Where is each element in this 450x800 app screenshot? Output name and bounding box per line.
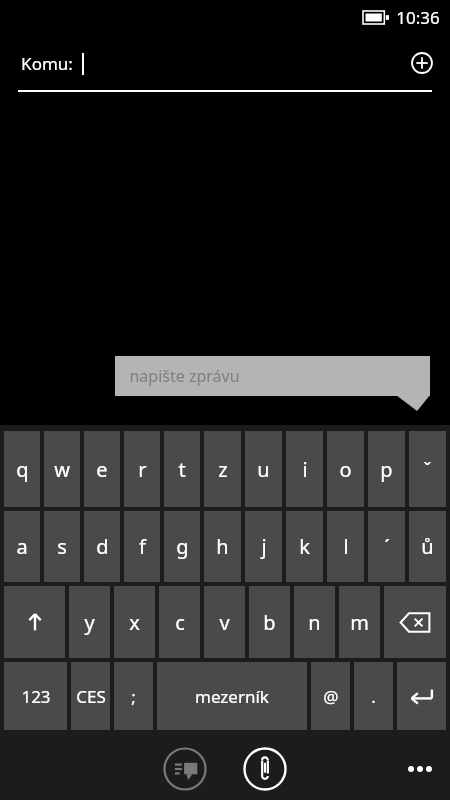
staticText: v	[219, 609, 230, 636]
button[interactable]: x	[114, 586, 155, 658]
staticText: i	[302, 456, 308, 483]
button[interactable]: ˇ	[409, 431, 446, 507]
button[interactable]: o	[327, 431, 364, 507]
staticText: k	[299, 533, 310, 560]
button[interactable]: Add recipient	[404, 45, 440, 81]
staticText: z	[218, 456, 228, 483]
button[interactable]: napište zprávu	[115, 356, 430, 396]
button[interactable]: Enter	[397, 662, 446, 730]
button[interactable]: More options	[398, 747, 442, 791]
button[interactable]: t	[164, 431, 200, 507]
staticText: l	[343, 533, 349, 560]
staticText: d	[96, 533, 109, 560]
staticText: x	[129, 609, 140, 636]
staticText: mezerník	[195, 685, 269, 708]
staticText: q	[16, 456, 29, 483]
button[interactable]: Komu:	[0, 34, 450, 92]
staticText: e	[96, 456, 108, 483]
staticText: ů	[421, 533, 434, 560]
button[interactable]: l	[327, 511, 364, 582]
button[interactable]: r	[124, 431, 160, 507]
button[interactable]: Backspace	[384, 586, 446, 658]
button[interactable]: e	[84, 431, 120, 507]
staticText: m	[350, 609, 369, 636]
staticText: @	[323, 685, 339, 708]
button[interactable]: @	[311, 662, 350, 730]
staticText: .	[371, 685, 376, 708]
button[interactable]: m	[339, 586, 380, 658]
staticText: t	[178, 456, 186, 483]
button[interactable]: v	[204, 586, 245, 658]
staticText: ˇ	[423, 456, 432, 483]
staticText: 123	[21, 685, 51, 708]
button[interactable]: y	[69, 586, 110, 658]
button[interactable]: ;	[114, 662, 153, 730]
button[interactable]: z	[204, 431, 241, 507]
staticText: s	[57, 533, 67, 560]
button[interactable]: a	[4, 511, 40, 582]
button[interactable]: Attach	[239, 743, 291, 795]
staticText: h	[216, 533, 229, 560]
button[interactable]: .	[354, 662, 393, 730]
button[interactable]: q	[4, 431, 40, 507]
button[interactable]: 123	[4, 662, 67, 730]
button[interactable]: n	[294, 586, 335, 658]
staticText: a	[16, 533, 28, 560]
staticText: ;	[131, 685, 136, 708]
staticText: Komu:	[21, 52, 73, 75]
button[interactable]: ů	[409, 511, 446, 582]
staticText: u	[257, 456, 270, 483]
staticText: f	[139, 533, 146, 560]
staticText: j	[261, 533, 267, 560]
button[interactable]: s	[44, 511, 80, 582]
staticText: c	[175, 609, 185, 636]
button[interactable]: ´	[368, 511, 405, 582]
button[interactable]: CES	[71, 662, 110, 730]
staticText: y	[84, 609, 95, 636]
staticText: 10:36	[396, 6, 440, 29]
button[interactable]: d	[84, 511, 120, 582]
staticText: ´	[384, 533, 390, 560]
staticText: napište zprávu	[129, 365, 240, 387]
staticText: n	[308, 609, 321, 636]
button[interactable]: w	[44, 431, 80, 507]
staticText: o	[339, 456, 352, 483]
staticText: w	[54, 456, 70, 483]
button[interactable]: g	[164, 511, 200, 582]
button[interactable]: mezerník	[157, 662, 307, 730]
staticText: p	[380, 456, 393, 483]
button[interactable]: Shift	[4, 586, 65, 658]
staticText: g	[176, 533, 189, 560]
button[interactable]: u	[245, 431, 282, 507]
button[interactable]: f	[124, 511, 160, 582]
button[interactable]: p	[368, 431, 405, 507]
staticText: CES	[76, 685, 106, 708]
button[interactable]: i	[286, 431, 323, 507]
button[interactable]: Quick messages	[159, 743, 211, 795]
staticText: b	[263, 609, 276, 636]
button[interactable]: c	[159, 586, 200, 658]
button[interactable]: b	[249, 586, 290, 658]
button[interactable]: k	[286, 511, 323, 582]
button[interactable]: j	[245, 511, 282, 582]
button[interactable]: h	[204, 511, 241, 582]
staticText: r	[138, 456, 147, 483]
